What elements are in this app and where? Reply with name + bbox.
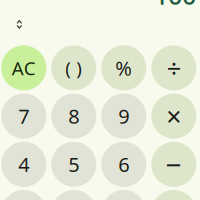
button[interactable]: 4: [1, 142, 46, 187]
staticText: 9: [118, 103, 129, 129]
staticText: 7: [18, 103, 29, 129]
button[interactable]: 9: [101, 94, 146, 139]
staticText: 5: [68, 151, 79, 178]
button[interactable]: Scroll: [16, 20, 22, 29]
staticText: 4: [18, 151, 29, 178]
staticText: AC: [12, 55, 36, 80]
staticText: ( ): [65, 55, 82, 80]
staticText: 100: [154, 0, 196, 12]
button[interactable]: 7: [1, 94, 46, 139]
staticText: 6: [118, 151, 129, 178]
button[interactable]: 6: [101, 142, 146, 187]
button[interactable]: 5: [51, 142, 96, 187]
button[interactable]: 3: [101, 190, 146, 200]
button[interactable]: 2: [51, 190, 96, 200]
staticText: ×: [166, 98, 181, 134]
button[interactable]: %: [101, 45, 146, 90]
button[interactable]: ( ): [51, 45, 96, 90]
staticText: −: [166, 146, 182, 183]
button[interactable]: 8: [51, 94, 96, 139]
button[interactable]: +: [151, 190, 196, 200]
staticText: ÷: [167, 51, 181, 85]
button[interactable]: −: [151, 142, 196, 187]
button[interactable]: AC: [1, 45, 46, 90]
staticText: %: [115, 55, 132, 81]
button[interactable]: ÷: [151, 45, 196, 90]
staticText: 8: [68, 103, 79, 129]
button[interactable]: 1: [1, 190, 46, 200]
button[interactable]: ×: [151, 94, 196, 139]
